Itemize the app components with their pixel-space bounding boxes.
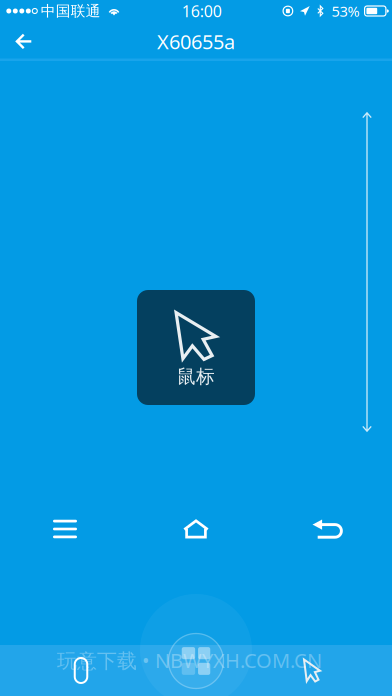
staticText: X60655a [157, 28, 235, 55]
button[interactable]: Voice input [50, 645, 112, 696]
button[interactable]: Menu [30, 504, 100, 554]
staticText: 53% [332, 1, 360, 21]
button[interactable]: Back [0, 22, 48, 61]
staticText: 中国联通 [41, 2, 101, 20]
staticText: 鼠标 [177, 365, 215, 388]
button[interactable]: Home [161, 504, 231, 554]
button[interactable]: Back [292, 504, 362, 554]
staticText: 玩意下载 • NBWYXH.COM.CN [57, 647, 322, 674]
button[interactable]: 鼠标 [137, 290, 255, 405]
button[interactable]: Mouse mode [281, 645, 343, 696]
staticText: 16:00 [182, 0, 222, 22]
